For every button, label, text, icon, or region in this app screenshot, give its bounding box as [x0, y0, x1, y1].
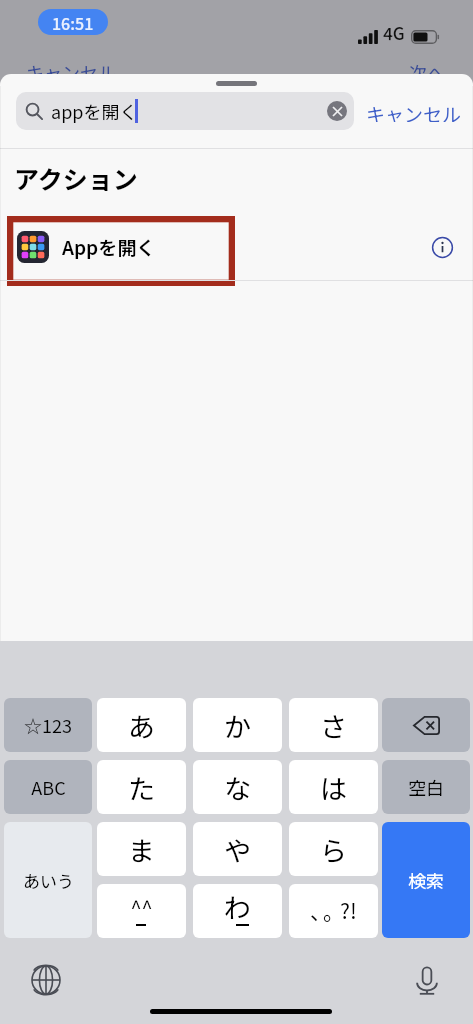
button[interactable]: ^^: [97, 884, 186, 938]
staticText: わ: [224, 887, 251, 926]
button[interactable]: 検索: [382, 822, 470, 938]
staticText: た: [128, 768, 155, 807]
staticText: キャンセル: [26, 59, 116, 85]
button[interactable]: ら: [289, 822, 378, 876]
button[interactable]: ABC: [4, 760, 92, 814]
staticText: 。: [323, 896, 344, 926]
staticText: 、: [310, 896, 331, 926]
button[interactable]: あ: [97, 698, 186, 752]
button[interactable]: Dictation: [409, 962, 445, 998]
staticText: ら: [320, 830, 347, 869]
staticText: 16:51: [52, 11, 94, 34]
staticText: あいう: [23, 868, 74, 893]
staticText: キャンセル: [366, 100, 462, 122]
button[interactable]: か: [193, 698, 282, 752]
staticText: 次へ: [409, 59, 445, 85]
staticText: 検索: [408, 867, 444, 893]
button[interactable]: あいう: [4, 822, 92, 938]
staticText: ☆123: [24, 712, 72, 738]
button[interactable]: 空白: [382, 760, 470, 814]
button[interactable]: わ: [193, 884, 282, 938]
button[interactable]: た: [97, 760, 186, 814]
staticText: 4G: [383, 20, 405, 45]
staticText: は: [320, 768, 347, 807]
button[interactable]: や: [193, 822, 282, 876]
button[interactable]: Delete: [382, 698, 470, 752]
staticText: か: [224, 706, 251, 745]
button[interactable]: は: [289, 760, 378, 814]
staticText: や: [224, 830, 251, 869]
button[interactable]: Appを開く: [0, 214, 473, 280]
button[interactable]: さ: [289, 698, 378, 752]
staticText: ?!: [340, 895, 357, 925]
button[interactable]: 、: [289, 884, 378, 938]
button[interactable]: な: [193, 760, 282, 814]
staticText: ま: [128, 830, 155, 869]
button[interactable]: Info: [431, 236, 454, 259]
staticText: あ: [128, 706, 155, 745]
staticText: ABC: [31, 774, 66, 800]
button[interactable]: Clear text: [327, 101, 347, 121]
staticText: Appを開く: [62, 233, 156, 261]
staticText: アクション: [14, 160, 138, 196]
staticText: さ: [320, 706, 347, 745]
staticText: な: [224, 768, 251, 807]
button[interactable]: appを開く: [16, 92, 354, 130]
button[interactable]: ま: [97, 822, 186, 876]
button[interactable]: ☆123: [4, 698, 92, 752]
button[interactable]: Change keyboard: [28, 962, 64, 998]
staticText: ^^: [130, 892, 153, 921]
staticText: appを開く: [51, 98, 138, 124]
button[interactable]: キャンセル: [366, 92, 462, 130]
staticText: 空白: [408, 774, 444, 800]
